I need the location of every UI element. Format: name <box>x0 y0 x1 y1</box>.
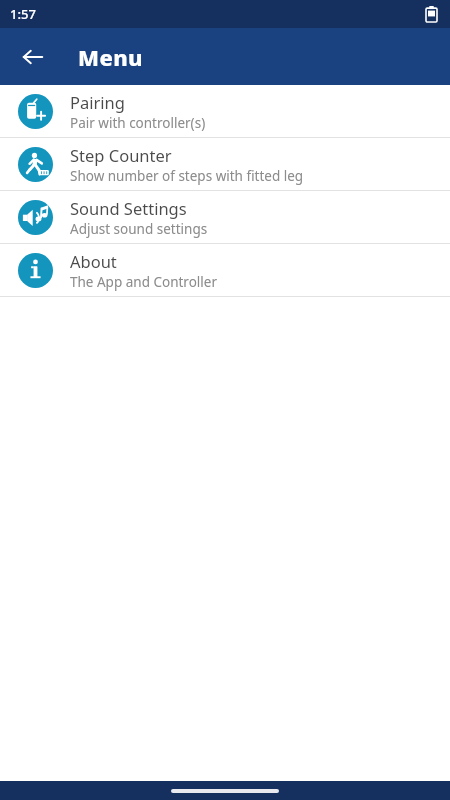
staticText: Pair with controller(s) <box>70 114 206 132</box>
staticText: 1:57 <box>10 5 36 23</box>
staticText: The App and Controller <box>70 273 217 291</box>
staticText: Show number of steps with fitted leg <box>70 167 304 185</box>
staticText: Menu <box>78 42 143 72</box>
button[interactable]: Sound Settings <box>0 191 450 244</box>
button[interactable]: Step Counter <box>0 138 450 191</box>
staticText: Step Counter <box>70 144 172 166</box>
button[interactable]: Back <box>11 35 55 79</box>
staticText: Pairing <box>70 91 125 113</box>
button[interactable]: Pairing <box>0 85 450 138</box>
staticText: Sound Settings <box>70 197 187 219</box>
button[interactable]: About <box>0 244 450 297</box>
staticText: Adjust sound settings <box>70 220 208 238</box>
staticText: About <box>70 250 117 272</box>
